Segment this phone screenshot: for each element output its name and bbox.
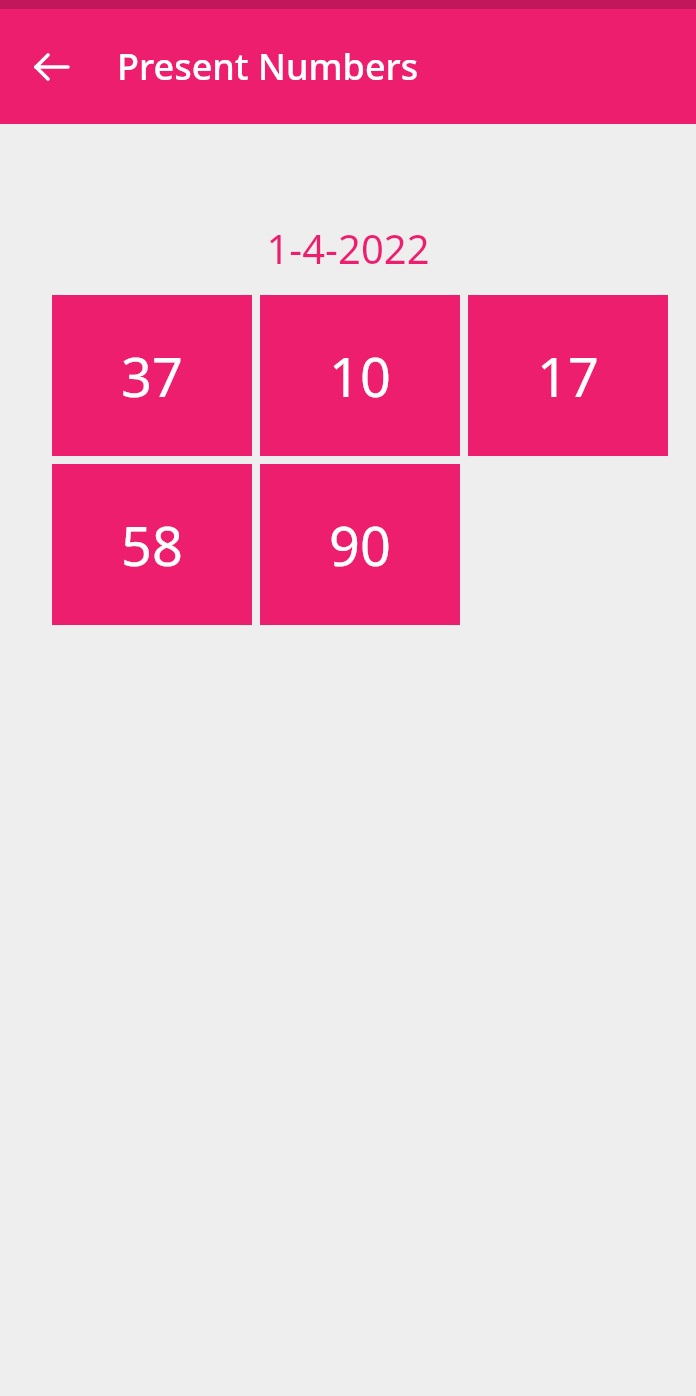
button[interactable]: 90: [260, 464, 460, 625]
button[interactable]: 58: [52, 464, 252, 625]
staticText: 37: [121, 339, 183, 413]
button[interactable]: 17: [468, 295, 668, 456]
staticText: 58: [121, 508, 183, 582]
staticText: 90: [329, 508, 391, 582]
staticText: 1-4-2022: [0, 221, 696, 275]
staticText: Present Numbers: [117, 42, 419, 91]
button[interactable]: 10: [260, 295, 460, 456]
staticText: 10: [329, 339, 391, 413]
button[interactable]: Back: [12, 27, 92, 107]
button[interactable]: 37: [52, 295, 252, 456]
staticText: 17: [537, 339, 599, 413]
